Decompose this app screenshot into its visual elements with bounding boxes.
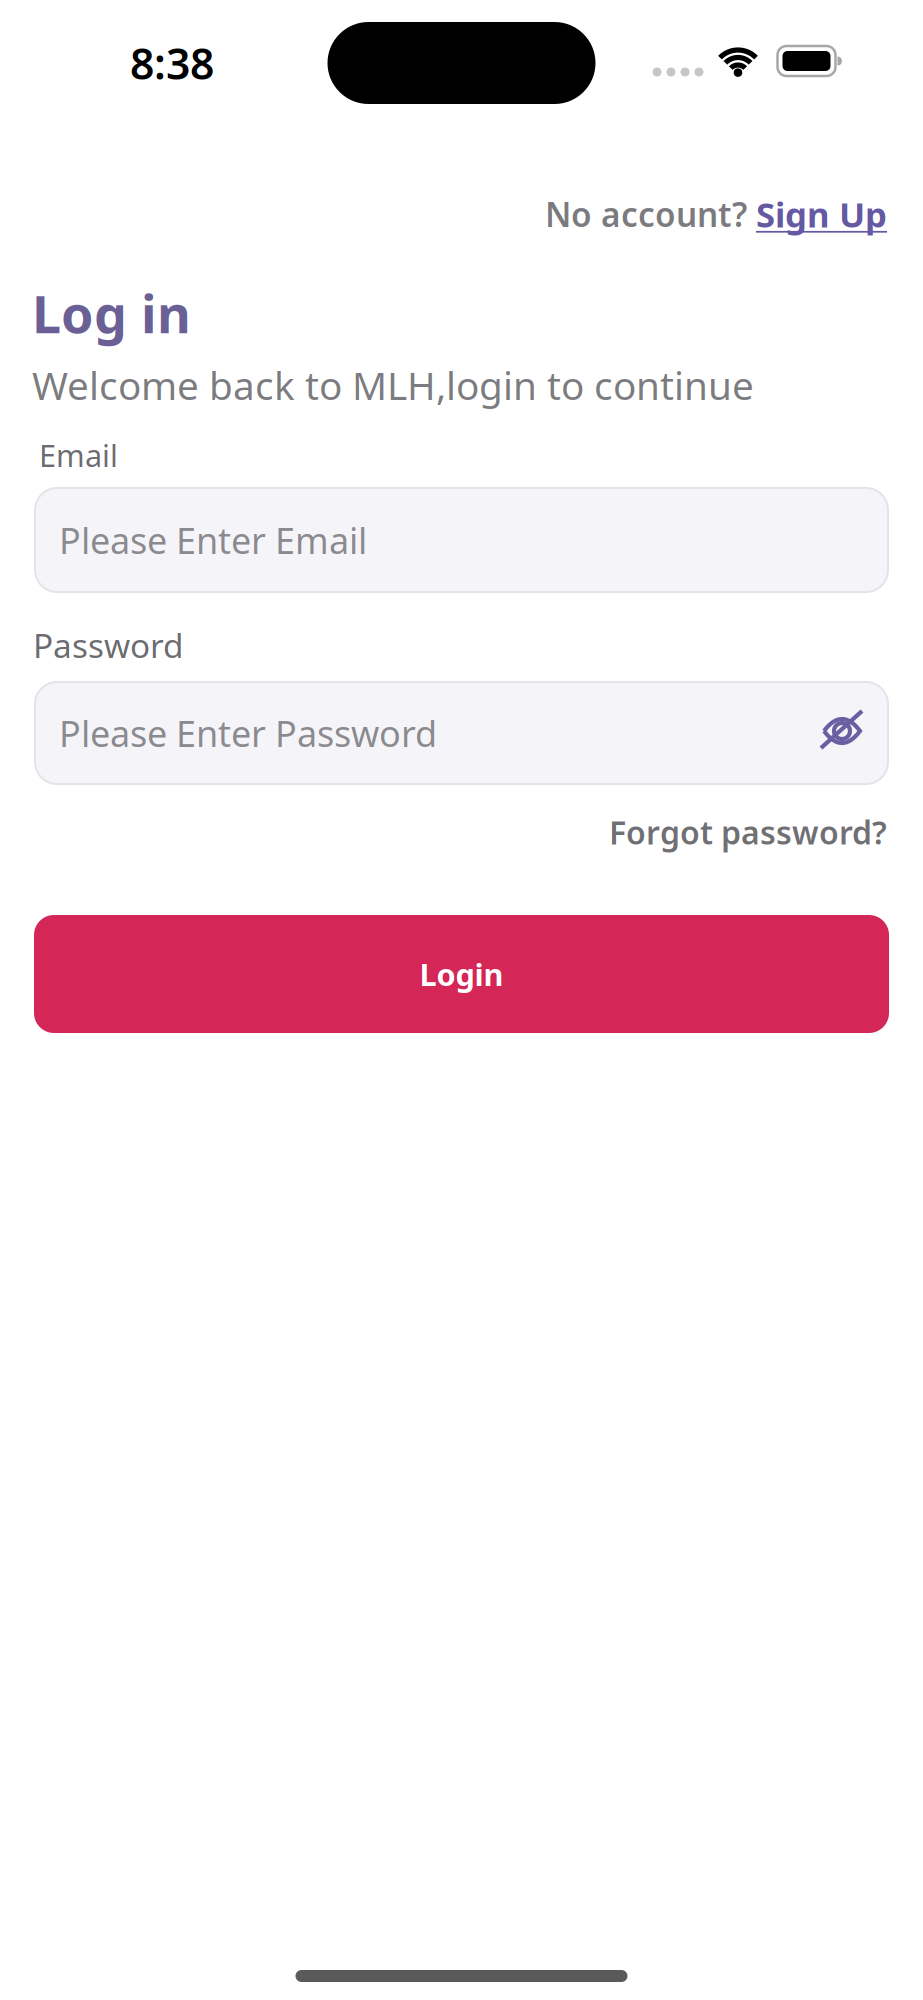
staticText: Password: [33, 623, 184, 667]
staticText: Forgot password?: [609, 811, 887, 853]
staticText: Welcome back to MLH,login to continue: [32, 359, 754, 411]
button[interactable]: Show password: [820, 710, 864, 752]
button[interactable]: Email: [35, 488, 888, 592]
staticText: 8:38: [130, 35, 214, 91]
button[interactable]: Login: [34, 915, 889, 1033]
button[interactable]: Forgot password?: [609, 811, 887, 853]
staticText: Email: [39, 435, 118, 475]
staticText: Please Enter Email: [59, 516, 367, 564]
button[interactable]: Sign Up: [756, 191, 887, 237]
staticText: No account?: [545, 192, 747, 236]
staticText: Sign Up: [756, 191, 887, 237]
staticText: Please Enter Password: [59, 709, 437, 757]
staticText: Login: [419, 954, 503, 994]
staticText: Log in: [32, 278, 191, 348]
button[interactable]: Password: [35, 682, 888, 784]
